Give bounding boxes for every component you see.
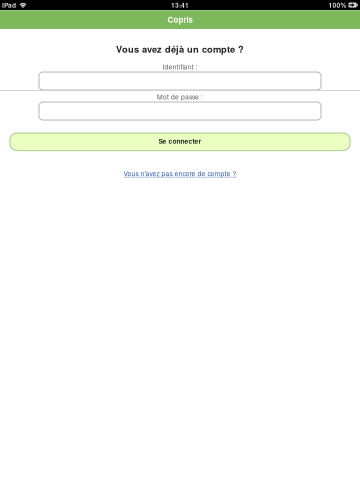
staticText: Copris — [167, 14, 192, 25]
button[interactable]: Vous n'avez pas encore de compte ? — [119, 165, 240, 182]
button[interactable]: Se connecter — [0, 133, 360, 151]
staticText: Identifiant : — [162, 62, 197, 71]
staticText: iPad — [2, 0, 16, 10]
staticText: Mot de passe : — [157, 92, 203, 101]
staticText: Vous avez déjà un compte ? — [116, 42, 244, 56]
staticText: 13:41 — [171, 0, 189, 10]
staticText: Vous n'avez pas encore de compte ? — [123, 169, 236, 178]
staticText: 100% — [328, 0, 346, 10]
staticText: Se connecter — [158, 136, 201, 146]
